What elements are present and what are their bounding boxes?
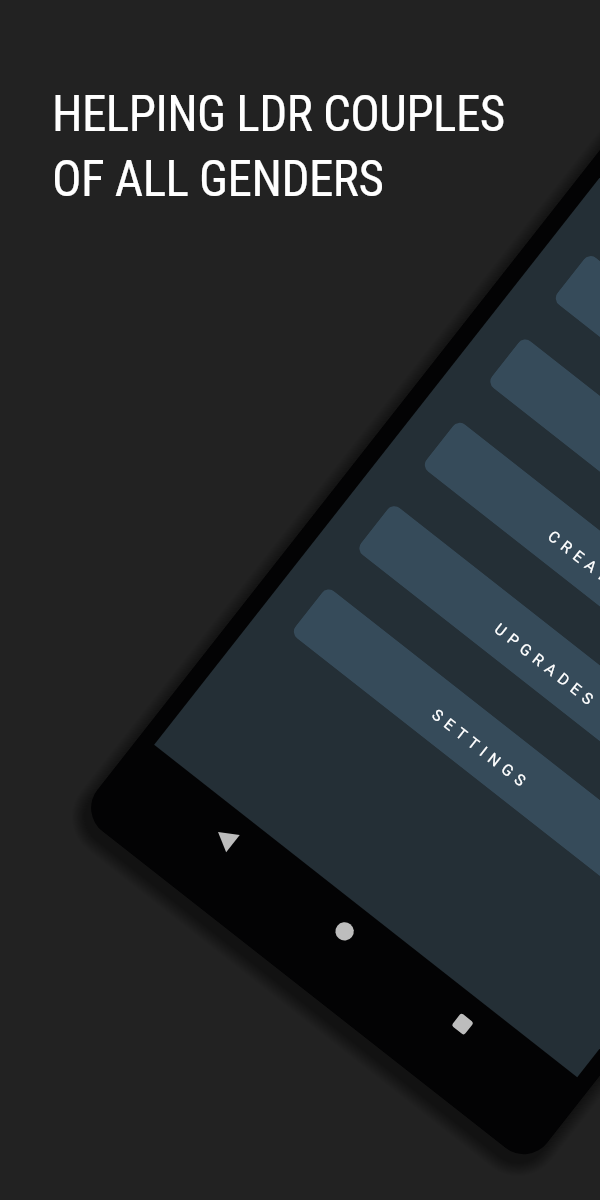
button[interactable]: COUNTDOWN — [552, 252, 600, 570]
button[interactable]: Recents — [429, 990, 496, 1058]
button[interactable]: MESSAGES — [487, 336, 600, 653]
button[interactable]: Back — [194, 806, 261, 873]
button[interactable]: SETTINGS — [290, 586, 600, 903]
staticText: CREATE LIST — [544, 527, 600, 638]
button[interactable]: Home — [311, 898, 378, 965]
button[interactable]: CREATE LIST — [421, 419, 600, 736]
staticText: SETTINGS — [428, 706, 534, 794]
staticText: HELPING LDR COUPLES OF ALL GENDERS — [52, 85, 505, 208]
staticText: UPGRADES — [490, 620, 600, 712]
button[interactable]: UPGRADES — [356, 502, 600, 820]
